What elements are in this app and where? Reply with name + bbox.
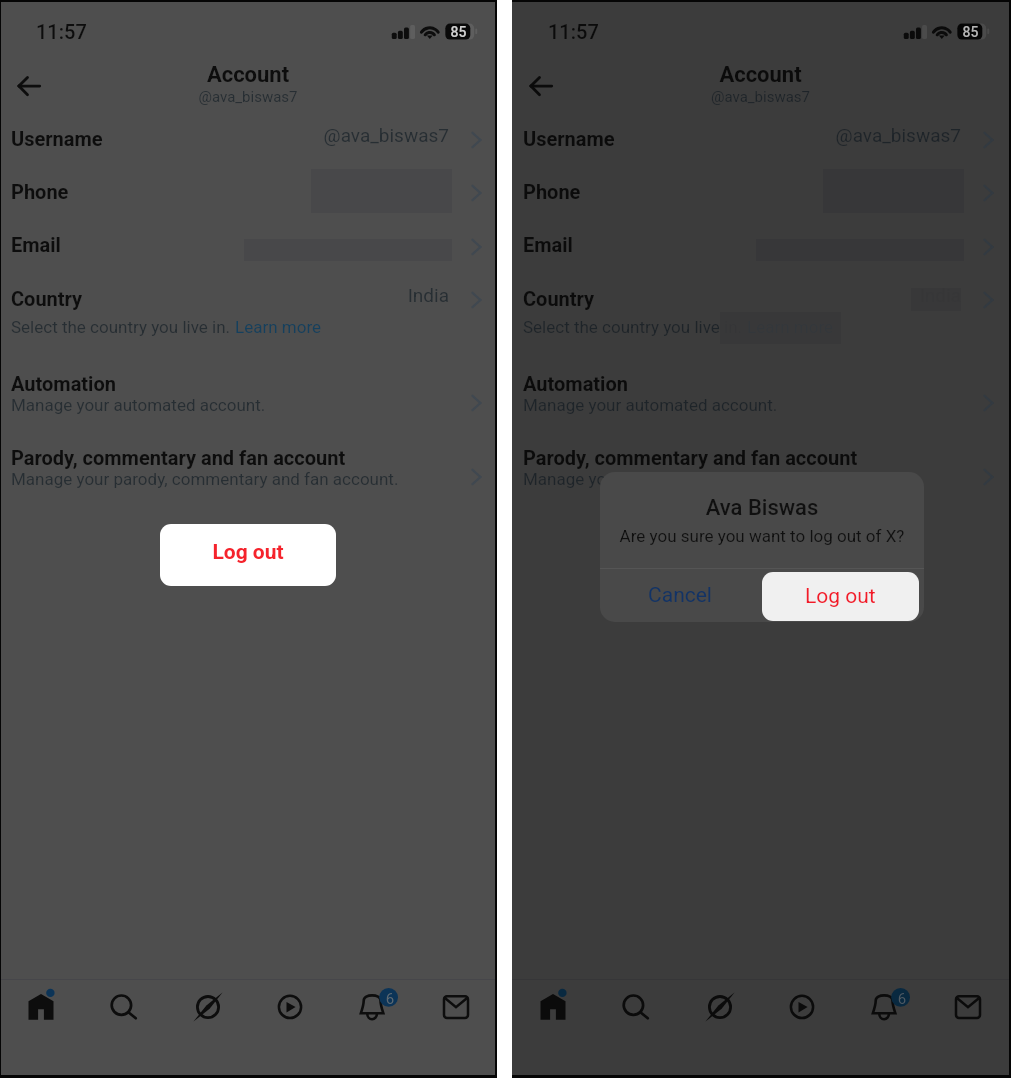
button[interactable]: Back [516,66,564,106]
staticText: 85 [446,24,471,40]
staticText: Account [512,62,1009,88]
button[interactable] [512,276,1009,324]
button[interactable] [0,276,496,324]
staticText: Cancel [600,583,760,608]
staticText: Are you sure you want to log out of X? [600,526,924,546]
button[interactable] [512,446,1009,502]
staticText: Automation [11,372,116,395]
button[interactable] [0,372,496,428]
staticText: Manage your automated account. [523,395,778,415]
staticText: Select the country you live in. [523,317,747,337]
button[interactable] [0,168,496,222]
button[interactable]: Learn more [235,317,322,337]
staticText: @ava_biswas7 [680,124,961,146]
button[interactable] [512,168,1009,222]
staticText: Email [11,233,61,256]
staticText: Parody, commentary and fan account [11,446,346,469]
button[interactable] [512,114,1009,168]
button[interactable]: Home [9,978,73,1036]
staticText: 6 [382,990,398,1008]
staticText: Automation [523,372,628,395]
staticText: 11:57 [548,20,599,43]
button[interactable]: Back [4,66,52,106]
button[interactable]: Grok [688,978,752,1036]
button[interactable]: Home [521,978,585,1036]
button[interactable]: Notifications [853,978,917,1036]
staticText: 85 [958,24,983,40]
staticText: @ava_biswas7 [168,124,449,146]
button[interactable]: Video [258,978,322,1036]
staticText: Ava Biswas [600,495,924,521]
button[interactable] [512,372,1009,428]
button[interactable]: Messages [424,978,488,1036]
button[interactable]: Log out [762,572,919,621]
staticText: India [288,284,449,306]
staticText: Phone [11,180,69,203]
button[interactable]: Grok [176,978,240,1036]
button[interactable]: Notifications [341,978,405,1036]
staticText: Country [523,287,595,310]
button[interactable]: Search [602,978,666,1036]
staticText: @ava_biswas7 [0,88,496,106]
staticText: Select the country you live in. [11,317,235,337]
button[interactable] [0,446,496,502]
staticText: Email [523,233,573,256]
button[interactable]: Messages [936,978,1000,1036]
staticText: 6 [894,990,910,1008]
button[interactable] [0,222,496,276]
staticText: Manage your parody, commentary and fan a… [523,469,911,489]
staticText: Phone [523,180,581,203]
staticText: Country [11,287,83,310]
staticText: Log out [805,584,876,609]
staticText: Manage your automated account. [11,395,266,415]
button[interactable] [0,114,496,168]
staticText: Username [11,127,103,150]
staticText: Username [523,127,615,150]
staticText: Parody, commentary and fan account [523,446,858,469]
button[interactable] [512,222,1009,276]
staticText: Log out [160,540,336,565]
button[interactable]: Log out [160,524,336,586]
button[interactable]: Cancel [600,569,760,622]
staticText: Account [0,62,496,88]
staticText: 11:57 [36,20,87,43]
button[interactable]: Search [90,978,154,1036]
staticText: @ava_biswas7 [512,88,1009,106]
button[interactable]: Video [770,978,834,1036]
staticText: Manage your parody, commentary and fan a… [11,469,399,489]
